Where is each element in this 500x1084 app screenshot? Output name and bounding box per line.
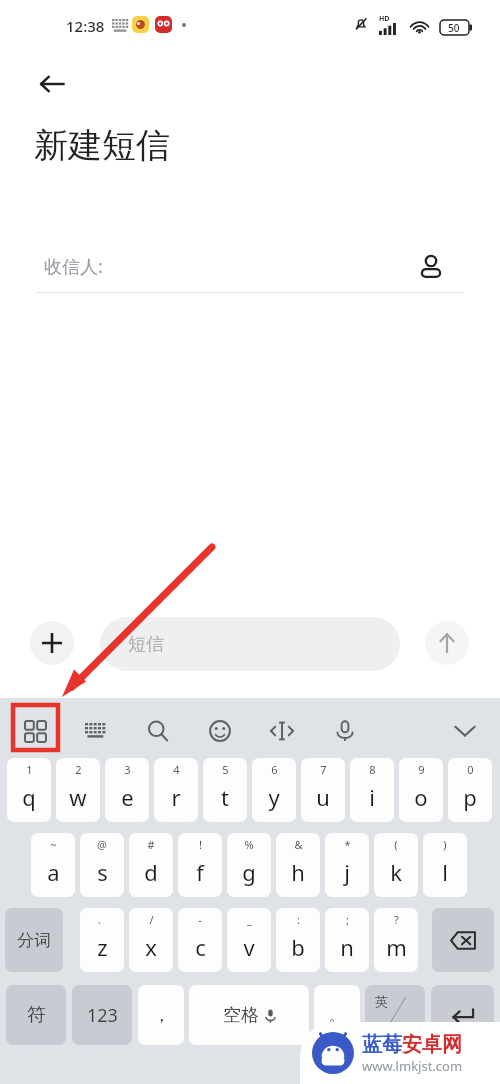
staticText: ? (394, 912, 399, 927)
staticText: _ (247, 912, 252, 927)
staticText: j (344, 857, 350, 887)
button[interactable]: ， (138, 985, 184, 1045)
button[interactable]: Voice input (322, 708, 368, 754)
button[interactable]: 1 (7, 758, 51, 822)
staticText: 7 (320, 762, 327, 777)
staticText: i (369, 782, 375, 812)
staticText: 分词 (17, 930, 51, 951)
staticText: 符 (27, 1003, 46, 1027)
button[interactable]: 、 (80, 908, 124, 972)
button[interactable]: 5 (203, 758, 247, 822)
staticText: 收信人: (44, 254, 103, 279)
button[interactable]: Text editing (259, 708, 305, 754)
button[interactable]: Enter (431, 985, 494, 1045)
staticText: HD (379, 14, 390, 24)
staticText: 0 (467, 762, 474, 777)
staticText: t (221, 782, 229, 812)
staticText: ， (153, 1005, 170, 1026)
button[interactable]: 6 (252, 758, 296, 822)
button[interactable]: Keyboard menu (12, 708, 58, 754)
button[interactable]: # (129, 833, 173, 897)
staticText: b (291, 932, 305, 962)
staticText: 50 (448, 21, 460, 35)
button[interactable]: 4 (154, 758, 198, 822)
button[interactable]: Send (425, 621, 469, 665)
staticText: 4 (173, 762, 180, 777)
button[interactable]: 英 (365, 985, 425, 1045)
staticText: ) (443, 837, 447, 852)
button[interactable]: 3 (105, 758, 149, 822)
staticText: @ (97, 837, 107, 852)
button[interactable]: ; (325, 908, 369, 972)
staticText: v (243, 932, 255, 962)
button[interactable]: 2 (56, 758, 100, 822)
staticText: ! (199, 837, 202, 852)
staticText: w (69, 782, 87, 812)
staticText: 安卓网 (402, 1032, 462, 1057)
button[interactable]: ~ (31, 833, 75, 897)
button[interactable]: 符 (6, 985, 66, 1045)
staticText: s (97, 857, 108, 887)
button[interactable]: 9 (399, 758, 443, 822)
staticText: 3 (124, 762, 131, 777)
staticText: o (414, 782, 428, 812)
button[interactable]: % (227, 833, 271, 897)
button[interactable]: Backspace (432, 908, 494, 972)
staticText: / (149, 912, 154, 927)
button[interactable]: ! (178, 833, 222, 897)
button[interactable]: 8 (350, 758, 394, 822)
staticText: z (97, 932, 108, 962)
staticText: 9 (418, 762, 425, 777)
button[interactable]: @ (80, 833, 124, 897)
staticText: 。 (329, 1005, 346, 1026)
button[interactable]: : (276, 908, 320, 972)
staticText: g (242, 857, 256, 887)
button[interactable]: ? (374, 908, 418, 972)
staticText: 英 (375, 993, 388, 1009)
button[interactable]: - (178, 908, 222, 972)
staticText: % (244, 837, 254, 852)
button[interactable]: Search (135, 708, 181, 754)
staticText: k (390, 857, 402, 887)
button[interactable]: Hide keyboard (442, 708, 488, 754)
staticText: m (386, 932, 407, 962)
staticText: f (196, 857, 204, 887)
button[interactable]: 7 (301, 758, 345, 822)
staticText: 蓝莓 (362, 1032, 402, 1057)
staticText: u (316, 782, 330, 812)
staticText: : (297, 912, 300, 927)
staticText: a (47, 857, 60, 887)
button[interactable]: Choose contact (408, 244, 454, 290)
button[interactable]: Keyboard layout (73, 708, 119, 754)
staticText: 12:38 (66, 16, 105, 36)
staticText: p (463, 782, 477, 812)
staticText: 空格 (223, 1004, 259, 1027)
button[interactable]: Add attachment (30, 621, 74, 665)
button[interactable]: ) (423, 833, 467, 897)
button[interactable]: Emoji (197, 708, 243, 754)
button[interactable]: 0 (448, 758, 492, 822)
button[interactable]: ( (374, 833, 418, 897)
staticText: q (22, 782, 36, 812)
button[interactable]: 。 (314, 985, 360, 1045)
staticText: # (147, 837, 155, 852)
staticText: y (268, 782, 280, 812)
staticText: c (195, 932, 206, 962)
staticText: 、 (97, 912, 108, 926)
button[interactable]: 短信 (100, 617, 400, 671)
staticText: www.lmkjst.com (362, 1057, 463, 1075)
button[interactable]: 123 (72, 985, 132, 1045)
staticText: 6 (271, 762, 278, 777)
button[interactable]: Back (28, 60, 76, 108)
button[interactable]: _ (227, 908, 271, 972)
staticText: ; (346, 912, 349, 927)
button[interactable]: / (129, 908, 173, 972)
button[interactable]: 分词 (5, 908, 63, 972)
button[interactable]: & (276, 833, 320, 897)
button[interactable]: 空格 (189, 985, 309, 1045)
button[interactable]: * (325, 833, 369, 897)
staticText: 1 (26, 762, 33, 777)
staticText: n (340, 932, 354, 962)
staticText: x (145, 932, 157, 962)
staticText: ~ (50, 837, 57, 852)
